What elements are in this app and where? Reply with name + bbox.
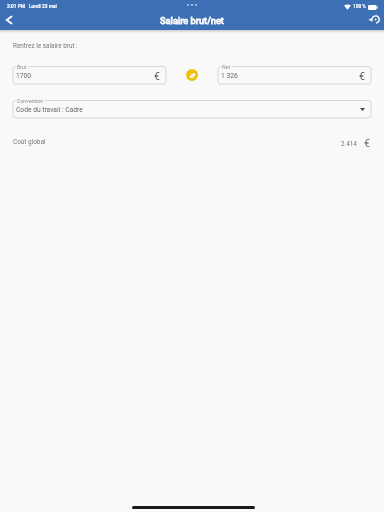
staticText: Code du travail : Cadre <box>16 106 83 114</box>
staticText: Net <box>222 64 231 70</box>
staticText: € <box>364 137 371 150</box>
button[interactable]: Swap <box>186 69 198 81</box>
staticText: Salaire brut/net <box>160 15 224 26</box>
staticText: € <box>359 70 365 82</box>
staticText: 3:01 PM <box>7 4 25 10</box>
button[interactable]: Convention <box>13 93 371 118</box>
staticText: 1700 <box>16 72 32 80</box>
staticText: Lundi 23 mai <box>29 4 57 10</box>
staticText: Rentrez le salaire brut : <box>13 42 78 50</box>
staticText: Brut <box>17 64 27 70</box>
button[interactable]: History <box>365 10 384 29</box>
staticText: 100 % <box>353 4 366 10</box>
staticText: Convention <box>17 98 44 104</box>
button[interactable]: Back <box>0 10 18 29</box>
button[interactable]: Net <box>218 59 371 84</box>
staticText: € <box>154 70 160 82</box>
staticText: Coût global <box>13 138 46 146</box>
button[interactable]: Brut <box>13 59 166 84</box>
staticText: 2 414 <box>341 140 357 148</box>
staticText: 1 326 <box>221 72 238 80</box>
